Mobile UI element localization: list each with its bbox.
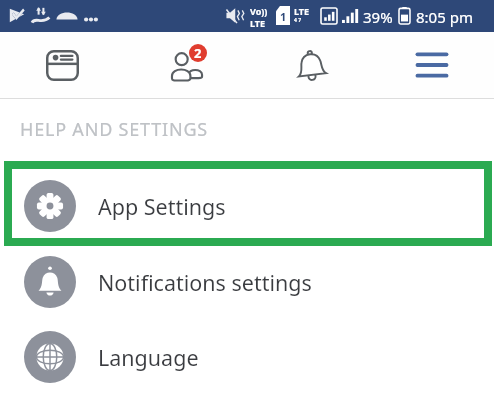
staticText: 8:05 pm — [416, 7, 473, 27]
staticText: LTE — [250, 17, 266, 29]
button[interactable]: News Feed — [0, 32, 123, 98]
staticText: 4 7 — [294, 17, 302, 24]
staticText: Notifications settings — [98, 268, 312, 297]
button[interactable]: Menu — [370, 32, 494, 98]
button[interactable]: App Settings — [0, 168, 494, 244]
button[interactable]: Notifications settings — [0, 244, 494, 320]
button[interactable]: Friend requests — [123, 32, 246, 98]
staticText: LTE — [294, 5, 310, 17]
staticText: HELP AND SETTINGS — [20, 117, 208, 142]
button[interactable]: Notifications — [246, 32, 370, 98]
staticText: 1 — [280, 9, 287, 24]
staticText: 39% — [363, 7, 393, 27]
button[interactable]: Language — [0, 320, 494, 394]
staticText: Vo)) — [250, 5, 268, 17]
staticText: 2 — [194, 44, 202, 62]
staticText: App Settings — [98, 192, 226, 221]
staticText: Language — [98, 343, 199, 372]
